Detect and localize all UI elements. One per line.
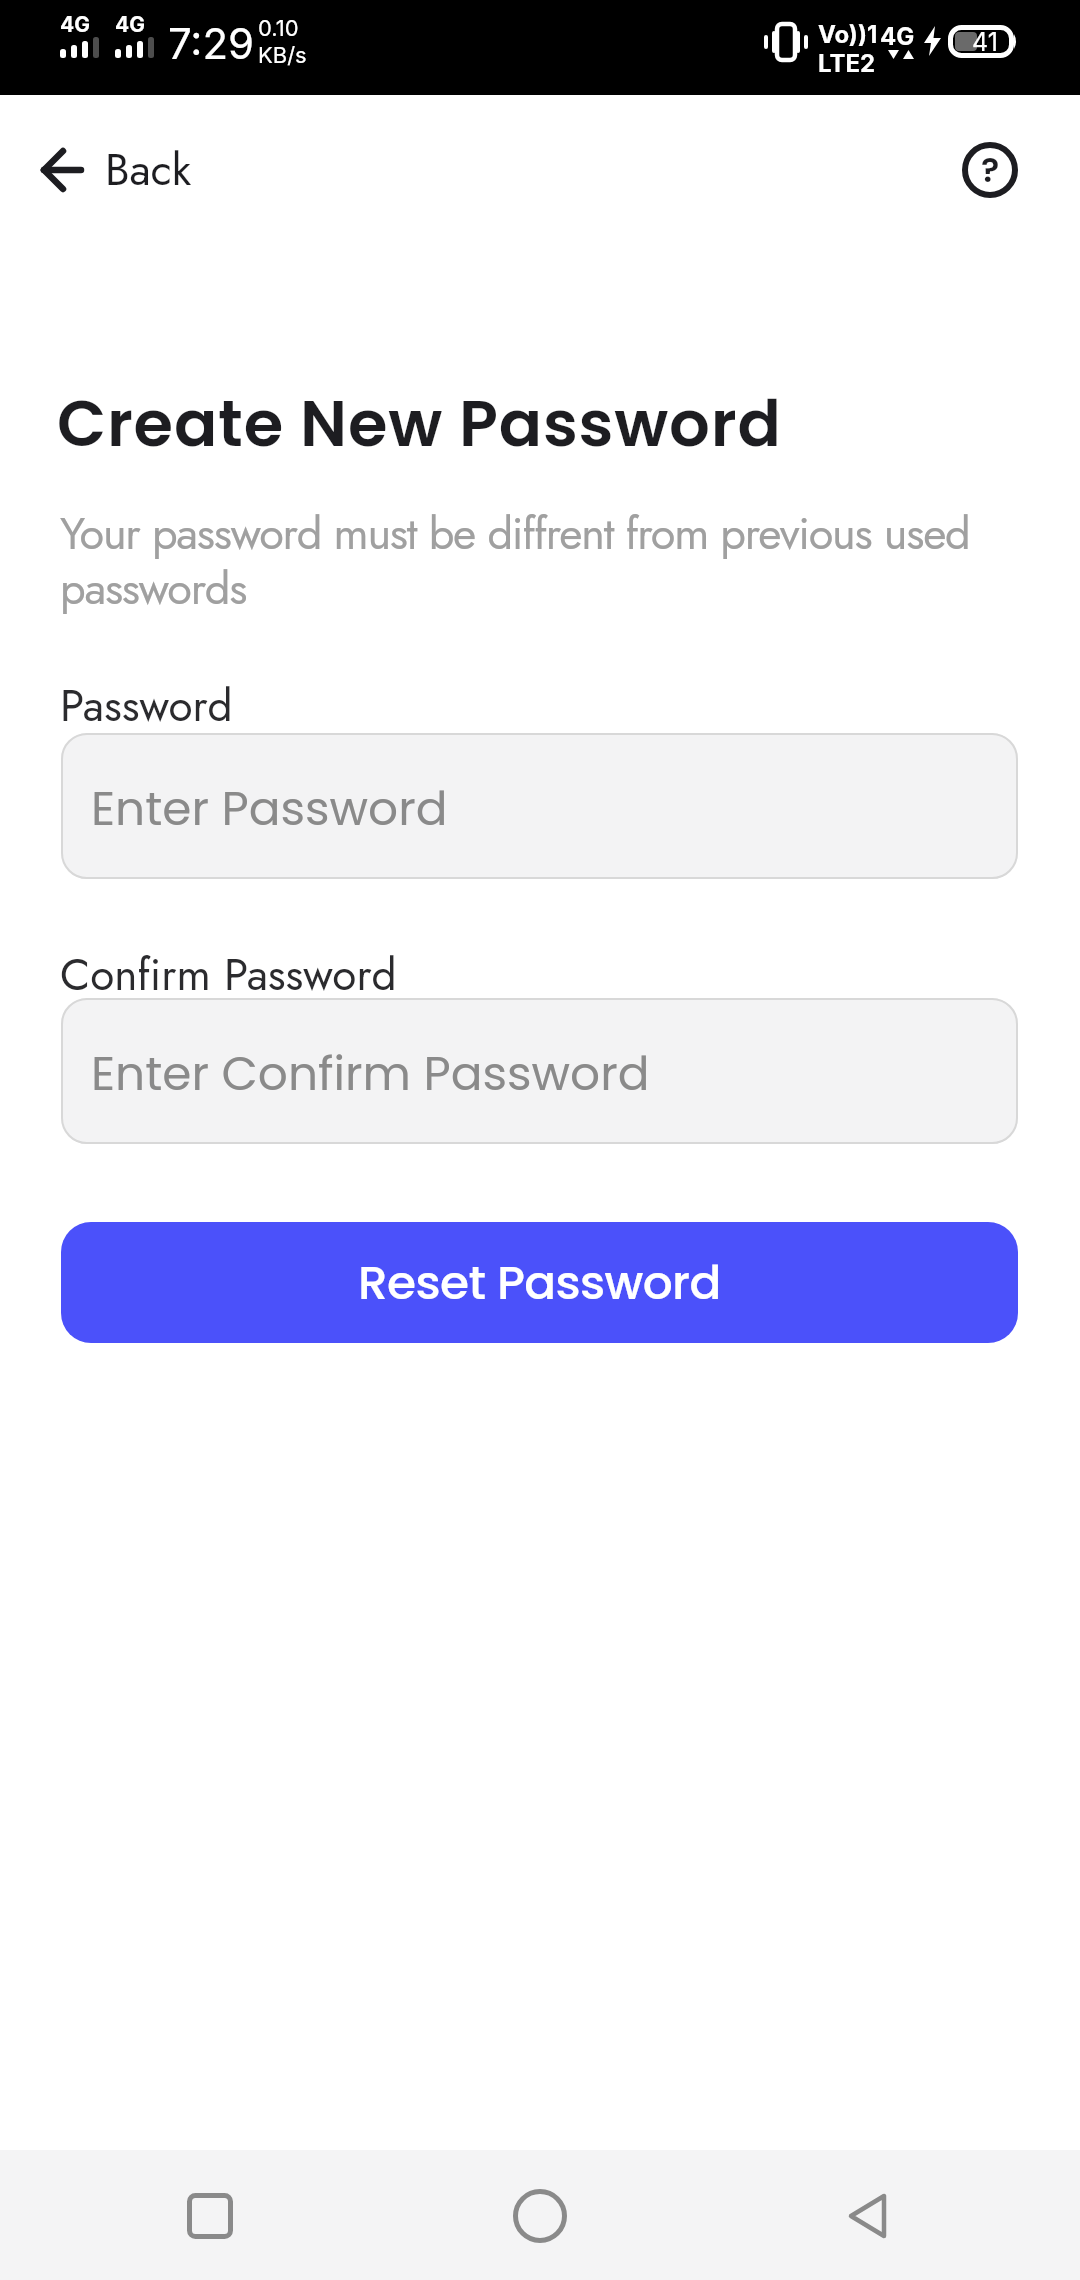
button[interactable] [170, 2176, 250, 2256]
staticText: Reset Password [358, 1250, 721, 1316]
button[interactable]: Back [30, 132, 202, 208]
staticText: Vo))1 [818, 20, 878, 49]
button[interactable]: Reset Password [61, 1222, 1018, 1343]
staticText: KB/s [258, 42, 307, 69]
staticText: LTE2 [818, 49, 876, 78]
staticText: Enter Password [91, 776, 448, 842]
staticText: Back [105, 138, 192, 202]
staticText: Your password must be diffrent from prev… [60, 501, 1005, 621]
staticText: Password [60, 674, 233, 738]
staticText: Enter Confirm Password [91, 1041, 650, 1107]
button[interactable]: Enter Password [61, 733, 1018, 879]
button[interactable] [500, 2176, 580, 2256]
staticText: ? [981, 146, 1000, 194]
staticText: 4G [115, 12, 145, 37]
staticText: 0.10 [258, 15, 299, 42]
staticText: 4G [60, 12, 90, 37]
button[interactable] [828, 2176, 908, 2256]
staticText: 7:29 [168, 18, 255, 69]
button[interactable]: ? [955, 135, 1025, 205]
staticText: Create New Password [57, 379, 782, 469]
staticText: 41 [972, 27, 998, 57]
button[interactable]: Enter Confirm Password [61, 998, 1018, 1144]
staticText: 4G [880, 22, 915, 51]
staticText: Confirm Password [60, 943, 397, 1007]
